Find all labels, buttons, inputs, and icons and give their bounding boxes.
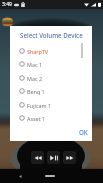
staticText: OK xyxy=(79,128,88,136)
staticText: 3:49 xyxy=(2,1,12,8)
button[interactable]: Mac 2 xyxy=(10,71,92,85)
staticText: Asset 1 xyxy=(27,115,46,122)
staticText: Mac 2 xyxy=(27,75,42,82)
button[interactable]: Mac 1 xyxy=(10,57,92,71)
button[interactable]: Next xyxy=(63,151,76,164)
button[interactable]: OK xyxy=(76,126,91,138)
button[interactable]: Fujicam 1 xyxy=(10,98,92,112)
button[interactable]: Home xyxy=(45,175,55,177)
button[interactable]: Benq 1 xyxy=(10,84,92,98)
staticText: Benq 1 xyxy=(27,88,45,95)
button[interactable]: Back xyxy=(18,174,23,179)
staticText: Fujicam 1 xyxy=(27,102,52,109)
button[interactable]: SharpTV xyxy=(10,44,92,58)
button[interactable]: Play xyxy=(47,151,60,164)
staticText: SharpTV xyxy=(27,48,49,55)
staticText: Mac 1 xyxy=(27,61,42,68)
staticText: Select Volume Device xyxy=(20,31,83,39)
button[interactable]: Asset 1 xyxy=(10,111,92,125)
button[interactable]: Previous xyxy=(31,151,44,164)
